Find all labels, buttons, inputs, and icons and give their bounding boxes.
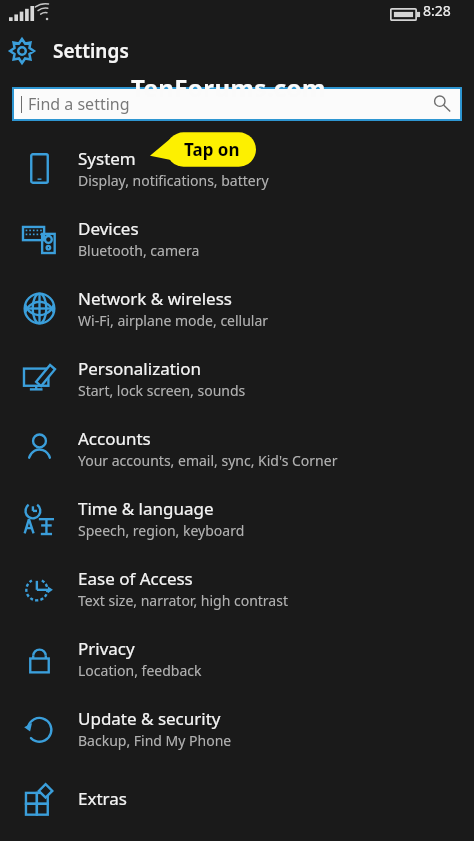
staticText: Text size, narrator, high contrast: [78, 591, 288, 610]
button[interactable]: Extras: [0, 763, 474, 833]
button[interactable]: Devices: [0, 203, 474, 273]
button[interactable]: Network & wireless: [0, 273, 474, 343]
button[interactable]: Update & security: [0, 693, 474, 763]
staticText: TenForums.com: [131, 71, 326, 104]
button[interactable]: Time & language: [0, 483, 474, 553]
button[interactable]: Privacy: [0, 623, 474, 693]
staticText: Location, feedback: [78, 661, 202, 680]
staticText: Devices: [78, 217, 139, 240]
staticText: Display, notifications, battery: [78, 171, 269, 190]
staticText: Speech, region, keyboard: [78, 521, 245, 540]
staticText: Personalization: [78, 357, 201, 380]
staticText: Extras: [78, 787, 127, 810]
staticText: Ease of Access: [78, 567, 193, 590]
staticText: Update & security: [78, 707, 221, 730]
staticText: Time & language: [78, 497, 214, 520]
button[interactable]: Accounts: [0, 413, 474, 483]
staticText: Your accounts, email, sync, Kid's Corner: [78, 451, 338, 470]
button[interactable]: System: [0, 133, 474, 203]
staticText: 8:28: [423, 1, 451, 20]
button[interactable]: Ease of Access: [0, 553, 474, 623]
staticText: Tap on: [184, 138, 240, 161]
staticText: Settings: [53, 38, 129, 64]
button[interactable]: Personalization: [0, 343, 474, 413]
staticText: Privacy: [78, 637, 135, 660]
staticText: Find a setting: [28, 93, 130, 115]
button[interactable]: Find a setting search field: [12, 87, 462, 121]
staticText: Backup, Find My Phone: [78, 731, 232, 750]
staticText: Start, lock screen, sounds: [78, 381, 246, 400]
staticText: Wi-Fi, airplane mode, cellular: [78, 311, 269, 330]
staticText: Accounts: [78, 427, 151, 450]
staticText: Bluetooth, camera: [78, 241, 200, 260]
staticText: System: [78, 147, 136, 170]
staticText: Network & wireless: [78, 287, 232, 310]
